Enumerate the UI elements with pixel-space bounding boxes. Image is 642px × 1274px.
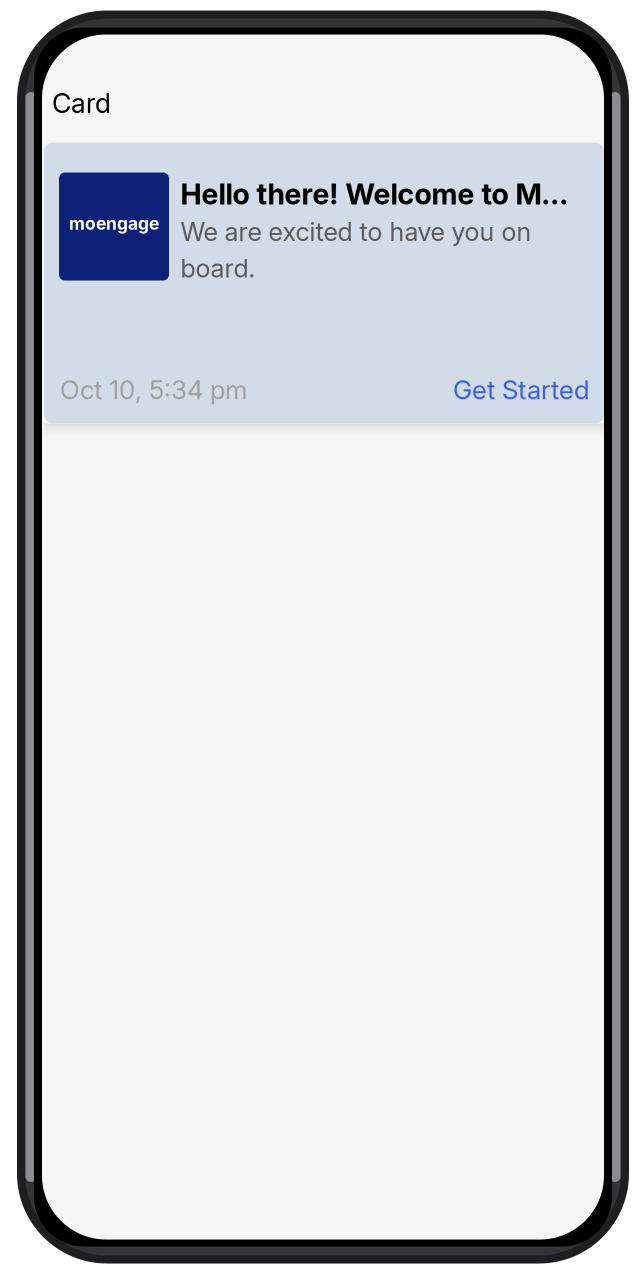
staticText: moengage: [69, 213, 159, 234]
staticText: Get Started: [453, 374, 589, 405]
staticText: Card: [52, 87, 111, 119]
staticText: We are excited to have you on board.: [180, 216, 531, 284]
staticText: Oct 10, 5:34 pm: [60, 374, 247, 405]
staticText: Hello there! Welcome to M...: [180, 176, 568, 211]
button[interactable]: Get Started: [453, 374, 589, 405]
button[interactable]: moengage: [42, 142, 604, 423]
